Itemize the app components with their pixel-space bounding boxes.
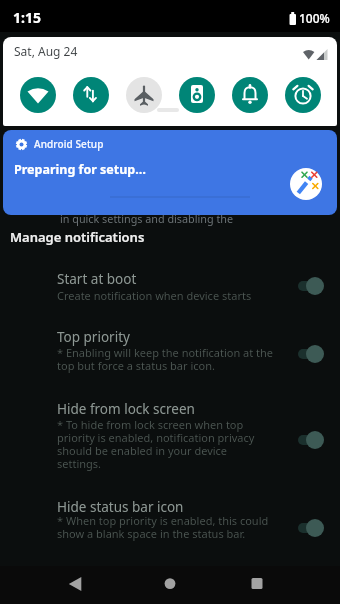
button[interactable] — [3, 130, 337, 215]
staticText: Start at boot — [57, 270, 137, 288]
staticText: * Enabling will keep the notification at… — [57, 345, 274, 360]
button[interactable] — [156, 570, 184, 598]
staticText: Top priority — [57, 328, 130, 346]
button[interactable] — [298, 349, 323, 359]
staticText: settings. — [57, 456, 102, 471]
staticText: should be enabled in your device — [57, 443, 228, 458]
button[interactable] — [285, 77, 321, 113]
button[interactable] — [20, 77, 56, 113]
staticText: Hide from lock screen — [57, 400, 195, 418]
staticText: Create notification when device starts — [57, 288, 252, 303]
staticText: top but force a status bar icon. — [57, 358, 215, 373]
staticText: in quick settings and disabling the — [60, 211, 234, 226]
button[interactable] — [126, 77, 162, 113]
button[interactable] — [61, 570, 89, 598]
button[interactable]: Manage notifications — [8, 227, 148, 247]
staticText: Hide status bar icon — [57, 498, 184, 516]
staticText: show a blank space in the status bar. — [57, 526, 246, 541]
button[interactable] — [179, 77, 215, 113]
button[interactable] — [73, 77, 109, 113]
staticText: * When top priority is enabled, this cou… — [57, 513, 269, 528]
button[interactable] — [243, 570, 271, 598]
staticText: Manage notifications — [10, 228, 145, 246]
button[interactable] — [298, 435, 323, 445]
button[interactable] — [298, 523, 323, 533]
staticText: 100% — [299, 10, 330, 26]
staticText: Preparing for setup… — [14, 161, 146, 178]
staticText: 1:15 — [13, 8, 41, 27]
button[interactable] — [298, 281, 323, 291]
staticText: Sat, Aug 24 — [14, 43, 78, 59]
staticText: Android Setup — [34, 137, 104, 151]
staticText: * To hide from lock screen when top — [57, 417, 244, 432]
button[interactable] — [232, 77, 268, 113]
staticText: priority is enabled, notification privac… — [57, 430, 255, 445]
